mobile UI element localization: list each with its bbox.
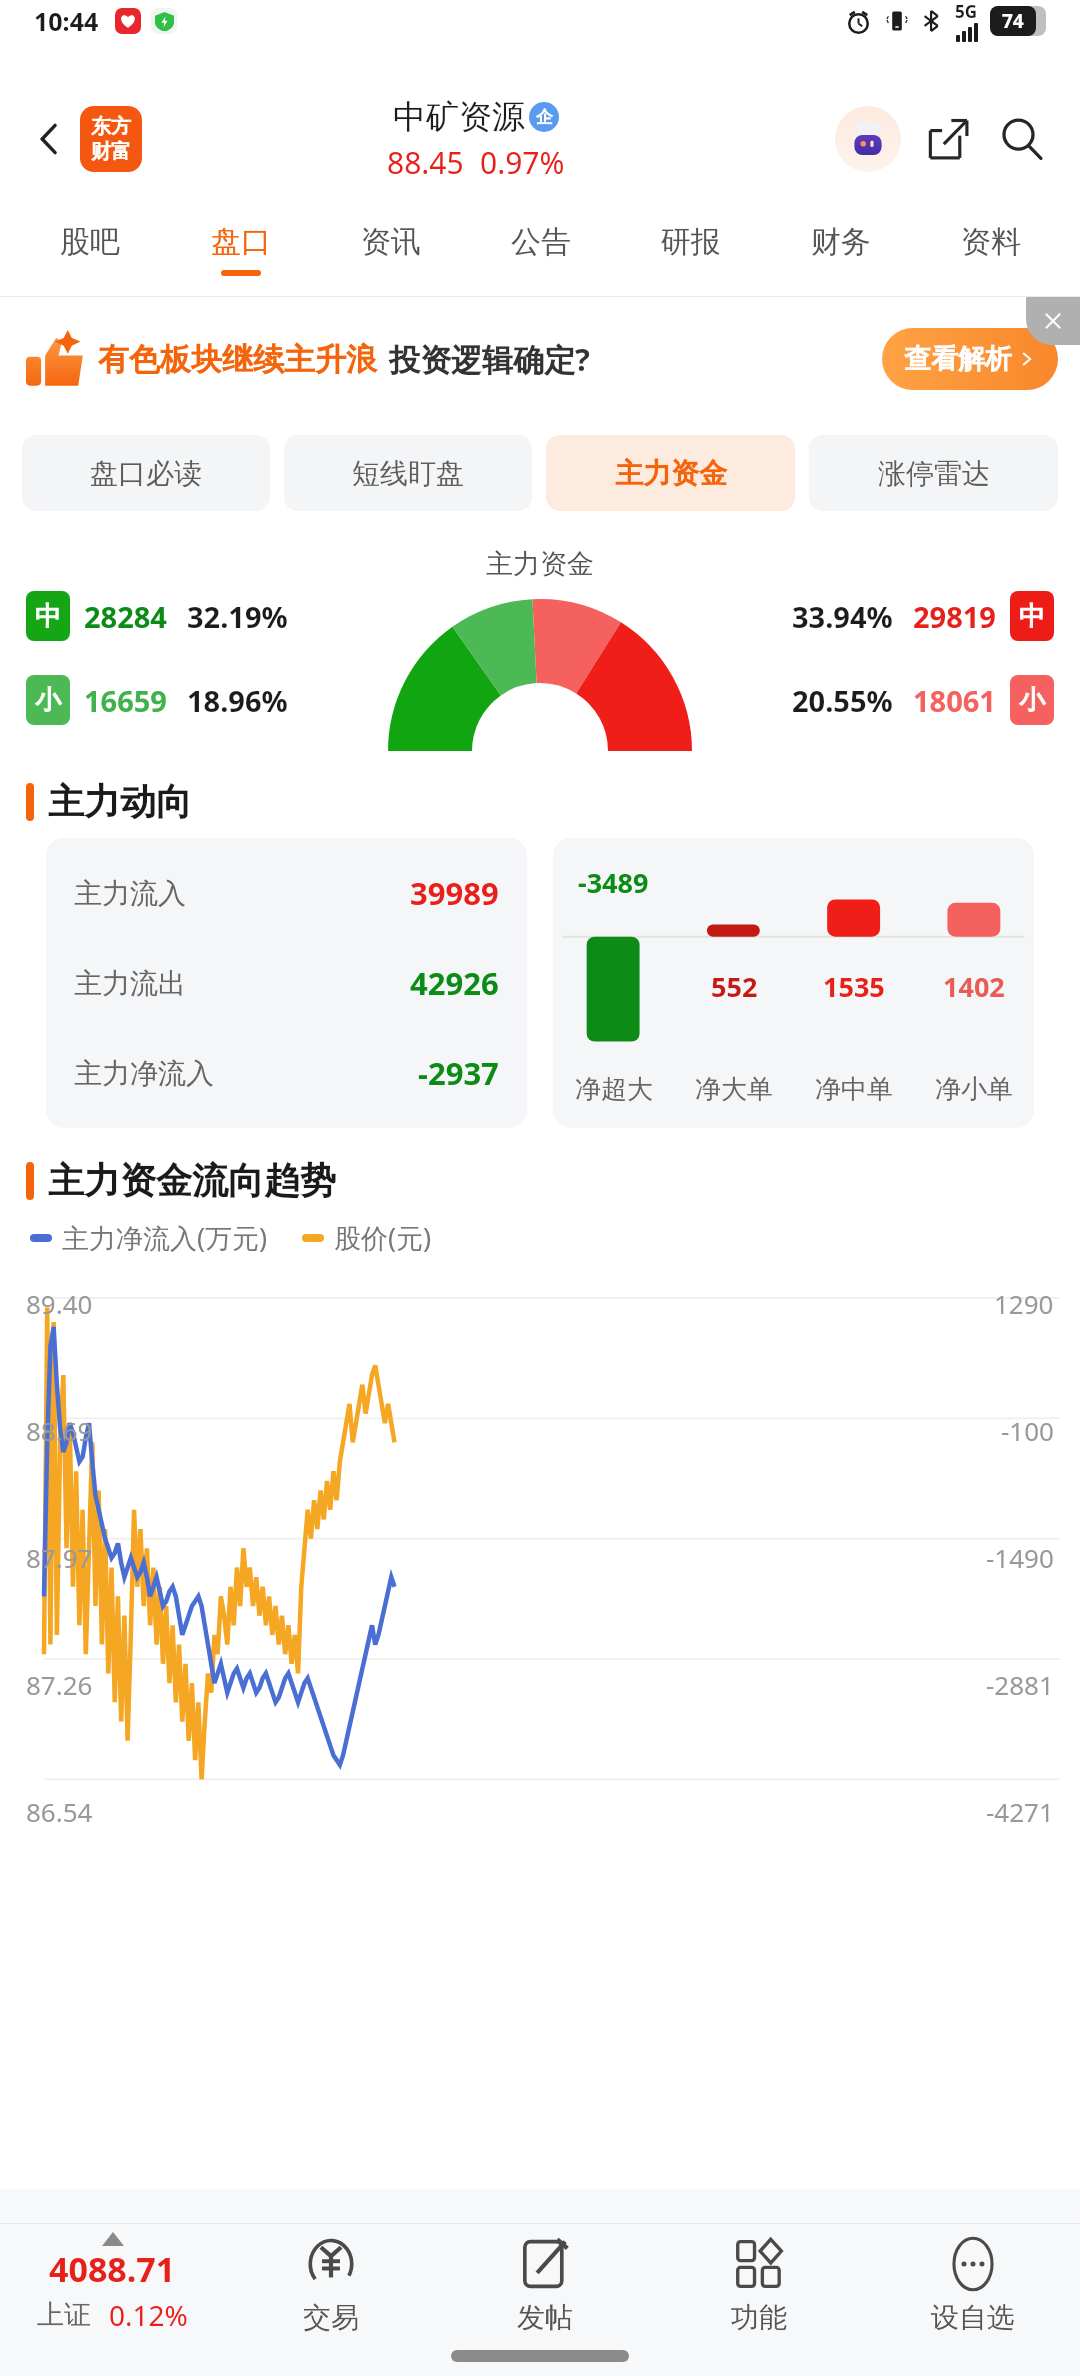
- button[interactable]: 财务: [766, 202, 916, 296]
- button[interactable]: 主力流入: [46, 838, 527, 1128]
- staticText: 净小单: [935, 1073, 1013, 1106]
- staticText: 42926: [410, 962, 499, 1004]
- staticText: 中: [35, 600, 61, 633]
- button[interactable]: 盘口: [165, 202, 316, 296]
- staticText: 33.94%: [792, 597, 893, 636]
- button[interactable]: 股吧: [14, 202, 165, 296]
- staticText: 87.97: [26, 1540, 93, 1575]
- staticText: 28284: [84, 597, 167, 636]
- button[interactable]: 交易: [224, 2224, 438, 2376]
- staticText: 88.69: [26, 1413, 93, 1448]
- staticText: -3489: [578, 864, 649, 901]
- staticText: 88.45: [387, 142, 464, 183]
- staticText: 投资逻辑确定?: [389, 338, 590, 380]
- button[interactable]: AI assistant: [830, 101, 906, 177]
- staticText: 资讯: [361, 223, 421, 261]
- staticText: 0.97%: [480, 142, 565, 183]
- staticText: 资料: [961, 223, 1021, 261]
- staticText: 29819: [913, 597, 996, 636]
- button[interactable]: 设自选: [866, 2224, 1080, 2376]
- staticText: -1490: [986, 1540, 1054, 1575]
- staticText: 交易: [303, 2300, 359, 2335]
- staticText: 中矿资源: [393, 96, 525, 138]
- staticText: -2881: [986, 1667, 1054, 1702]
- staticText: 发帖: [517, 2300, 573, 2335]
- staticText: 短线盯盘: [352, 456, 464, 491]
- button[interactable]: 涨停雷达: [809, 435, 1058, 511]
- staticText: 主力净流入: [74, 1056, 214, 1091]
- staticText: 研报: [661, 223, 721, 261]
- staticText: 查看解析: [904, 342, 1012, 376]
- button[interactable]: 查看解析: [882, 328, 1058, 390]
- button[interactable]: 东方财富: [80, 106, 142, 172]
- staticText: 89.40: [26, 1286, 93, 1321]
- staticText: 净超大: [575, 1073, 653, 1106]
- staticText: -100: [1001, 1413, 1054, 1448]
- staticText: 财务: [811, 223, 871, 261]
- staticText: 财富: [91, 139, 131, 164]
- staticText: 功能: [731, 2300, 787, 2335]
- staticText: 上证: [37, 2298, 91, 2332]
- staticText: 股价(元): [334, 1219, 432, 1256]
- button[interactable]: Back: [18, 108, 80, 170]
- staticText: 东方: [91, 114, 131, 139]
- staticText: 主力动向: [48, 779, 192, 824]
- staticText: 1402: [943, 968, 1005, 1005]
- staticText: 18061: [913, 681, 996, 720]
- staticText: 74: [1002, 8, 1024, 34]
- staticText: 股吧: [60, 223, 120, 261]
- staticText: 盘口: [211, 223, 271, 261]
- button[interactable]: 资料: [916, 202, 1066, 296]
- staticText: 1535: [823, 968, 885, 1005]
- staticText: 有色板块继续主升浪: [98, 340, 377, 379]
- staticText: 4088.71: [49, 2246, 176, 2292]
- staticText: 16659: [84, 681, 167, 720]
- staticText: 86.54: [26, 1794, 93, 1824]
- staticText: 主力资金流向趋势: [48, 1158, 336, 1203]
- staticText: 552: [711, 968, 758, 1005]
- button[interactable]: 短线盯盘: [284, 435, 532, 511]
- button[interactable]: 研报: [616, 202, 766, 296]
- button[interactable]: 主力资金: [546, 435, 795, 511]
- staticText: 涨停雷达: [878, 456, 990, 491]
- button[interactable]: 盘口必读: [22, 435, 270, 511]
- button[interactable]: Share: [914, 105, 982, 173]
- staticText: 32.19%: [187, 597, 288, 636]
- staticText: -4271: [986, 1794, 1054, 1824]
- staticText: 公告: [511, 223, 571, 261]
- staticText: 39989: [410, 872, 499, 914]
- staticText: 5G: [955, 0, 978, 23]
- staticText: 18.96%: [187, 681, 288, 720]
- staticText: 小: [1019, 684, 1045, 717]
- staticText: 主力资金: [615, 456, 727, 491]
- staticText: 主力净流入(万元): [62, 1219, 268, 1256]
- staticText: 净大单: [695, 1073, 773, 1106]
- staticText: 1290: [994, 1286, 1054, 1321]
- staticText: 10:44: [34, 4, 99, 38]
- staticText: 企: [536, 107, 553, 128]
- staticText: 净中单: [815, 1073, 893, 1106]
- staticText: 87.26: [26, 1667, 93, 1702]
- staticText: 主力资金: [486, 547, 594, 581]
- button[interactable]: 资讯: [316, 202, 466, 296]
- button[interactable]: 功能: [652, 2224, 866, 2376]
- staticText: 中: [1019, 600, 1045, 633]
- button[interactable]: -3489: [553, 838, 1034, 1128]
- staticText: 主力流入: [74, 876, 186, 911]
- staticText: 0.12%: [109, 2296, 188, 2334]
- button[interactable]: 4088.71: [0, 2224, 224, 2376]
- button[interactable]: 发帖: [438, 2224, 652, 2376]
- button[interactable]: 公告: [466, 202, 616, 296]
- staticText: -2937: [418, 1052, 499, 1094]
- button[interactable]: Search: [988, 105, 1056, 173]
- staticText: 主力流出: [74, 966, 186, 1001]
- staticText: 小: [35, 684, 61, 717]
- staticText: 20.55%: [792, 681, 893, 720]
- staticText: 设自选: [931, 2300, 1015, 2335]
- button[interactable]: Close ad: [1026, 297, 1080, 345]
- staticText: 盘口必读: [90, 456, 202, 491]
